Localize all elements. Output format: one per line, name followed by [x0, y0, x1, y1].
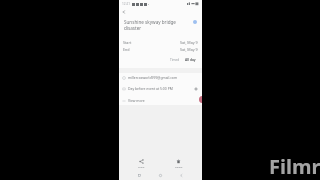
staticText: Sat, May 9	[180, 40, 198, 45]
staticText: Sat, May 9	[180, 47, 198, 52]
button[interactable]: Edit event	[199, 96, 202, 103]
staticText: millercoxworld999@gmail.com	[128, 75, 178, 80]
button[interactable]: millercoxworld999@gmail.com	[119, 72, 202, 83]
staticText: End	[123, 47, 130, 52]
button[interactable]: Home	[156, 171, 164, 179]
staticText: Share	[138, 165, 145, 168]
button[interactable]: View more	[119, 95, 202, 106]
staticText: Start	[123, 40, 132, 45]
button[interactable]: Recents	[135, 171, 143, 179]
staticText: Filmr	[269, 153, 320, 180]
staticText: disaster	[124, 25, 142, 31]
staticText: Day before event at 5:00 PM	[128, 86, 173, 91]
button[interactable]: Day before event at 5:00 PM	[119, 83, 202, 94]
button[interactable]: All day	[184, 57, 197, 63]
button[interactable]: Back	[177, 171, 185, 179]
button[interactable]: Share	[136, 158, 147, 169]
staticText: Sunshine skyway bridge	[124, 19, 176, 25]
staticText: Delete	[175, 165, 183, 168]
staticText: Timed	[170, 58, 180, 62]
button[interactable]: Timed	[169, 57, 181, 63]
staticText: View more	[128, 98, 145, 103]
button[interactable]: Delete	[173, 158, 184, 169]
staticText: All day	[185, 58, 196, 62]
staticText: 12:21	[122, 2, 131, 6]
button[interactable]: Back	[120, 8, 128, 16]
